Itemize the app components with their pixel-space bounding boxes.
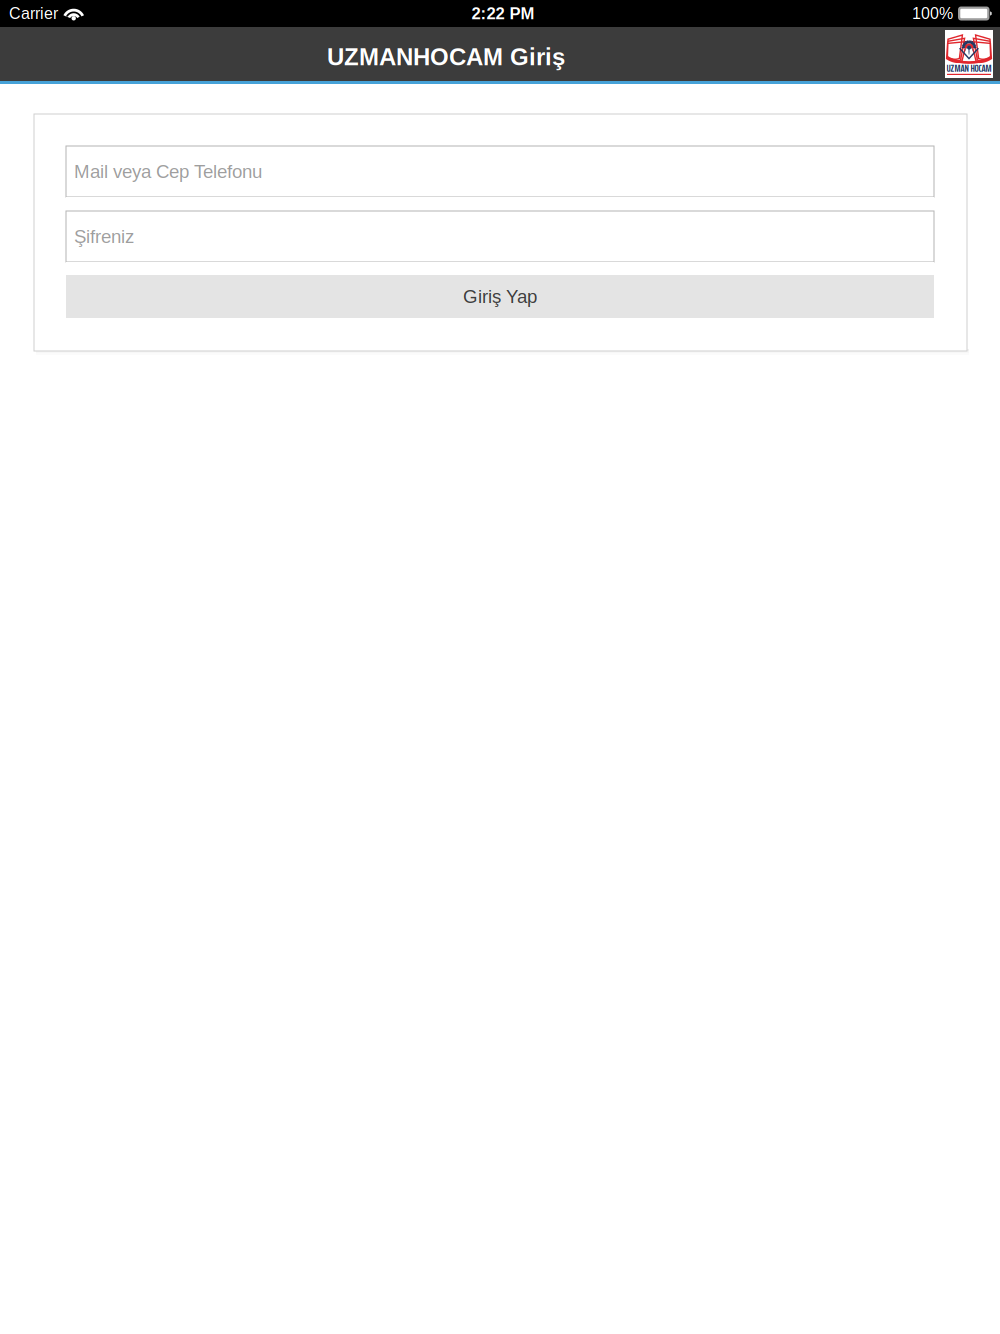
staticText: Mail veya Cep Telefonu (74, 161, 262, 182)
staticText: 2:22 PM (471, 4, 534, 23)
button[interactable]: Mail veya Cep Telefonu (66, 146, 934, 197)
staticText: 100% (912, 5, 953, 22)
staticText: Şifreniz (74, 226, 134, 247)
staticText: Carrier (9, 5, 58, 22)
staticText: Giriş Yap (463, 286, 537, 307)
button[interactable]: UzmanHocam (945, 30, 993, 78)
staticText: UZMAN HOCAM (946, 60, 991, 76)
button[interactable]: Giriş Yap (66, 275, 934, 318)
staticText: UZMANHOCAM Giriş (327, 44, 565, 70)
button[interactable]: Şifreniz (66, 211, 934, 262)
